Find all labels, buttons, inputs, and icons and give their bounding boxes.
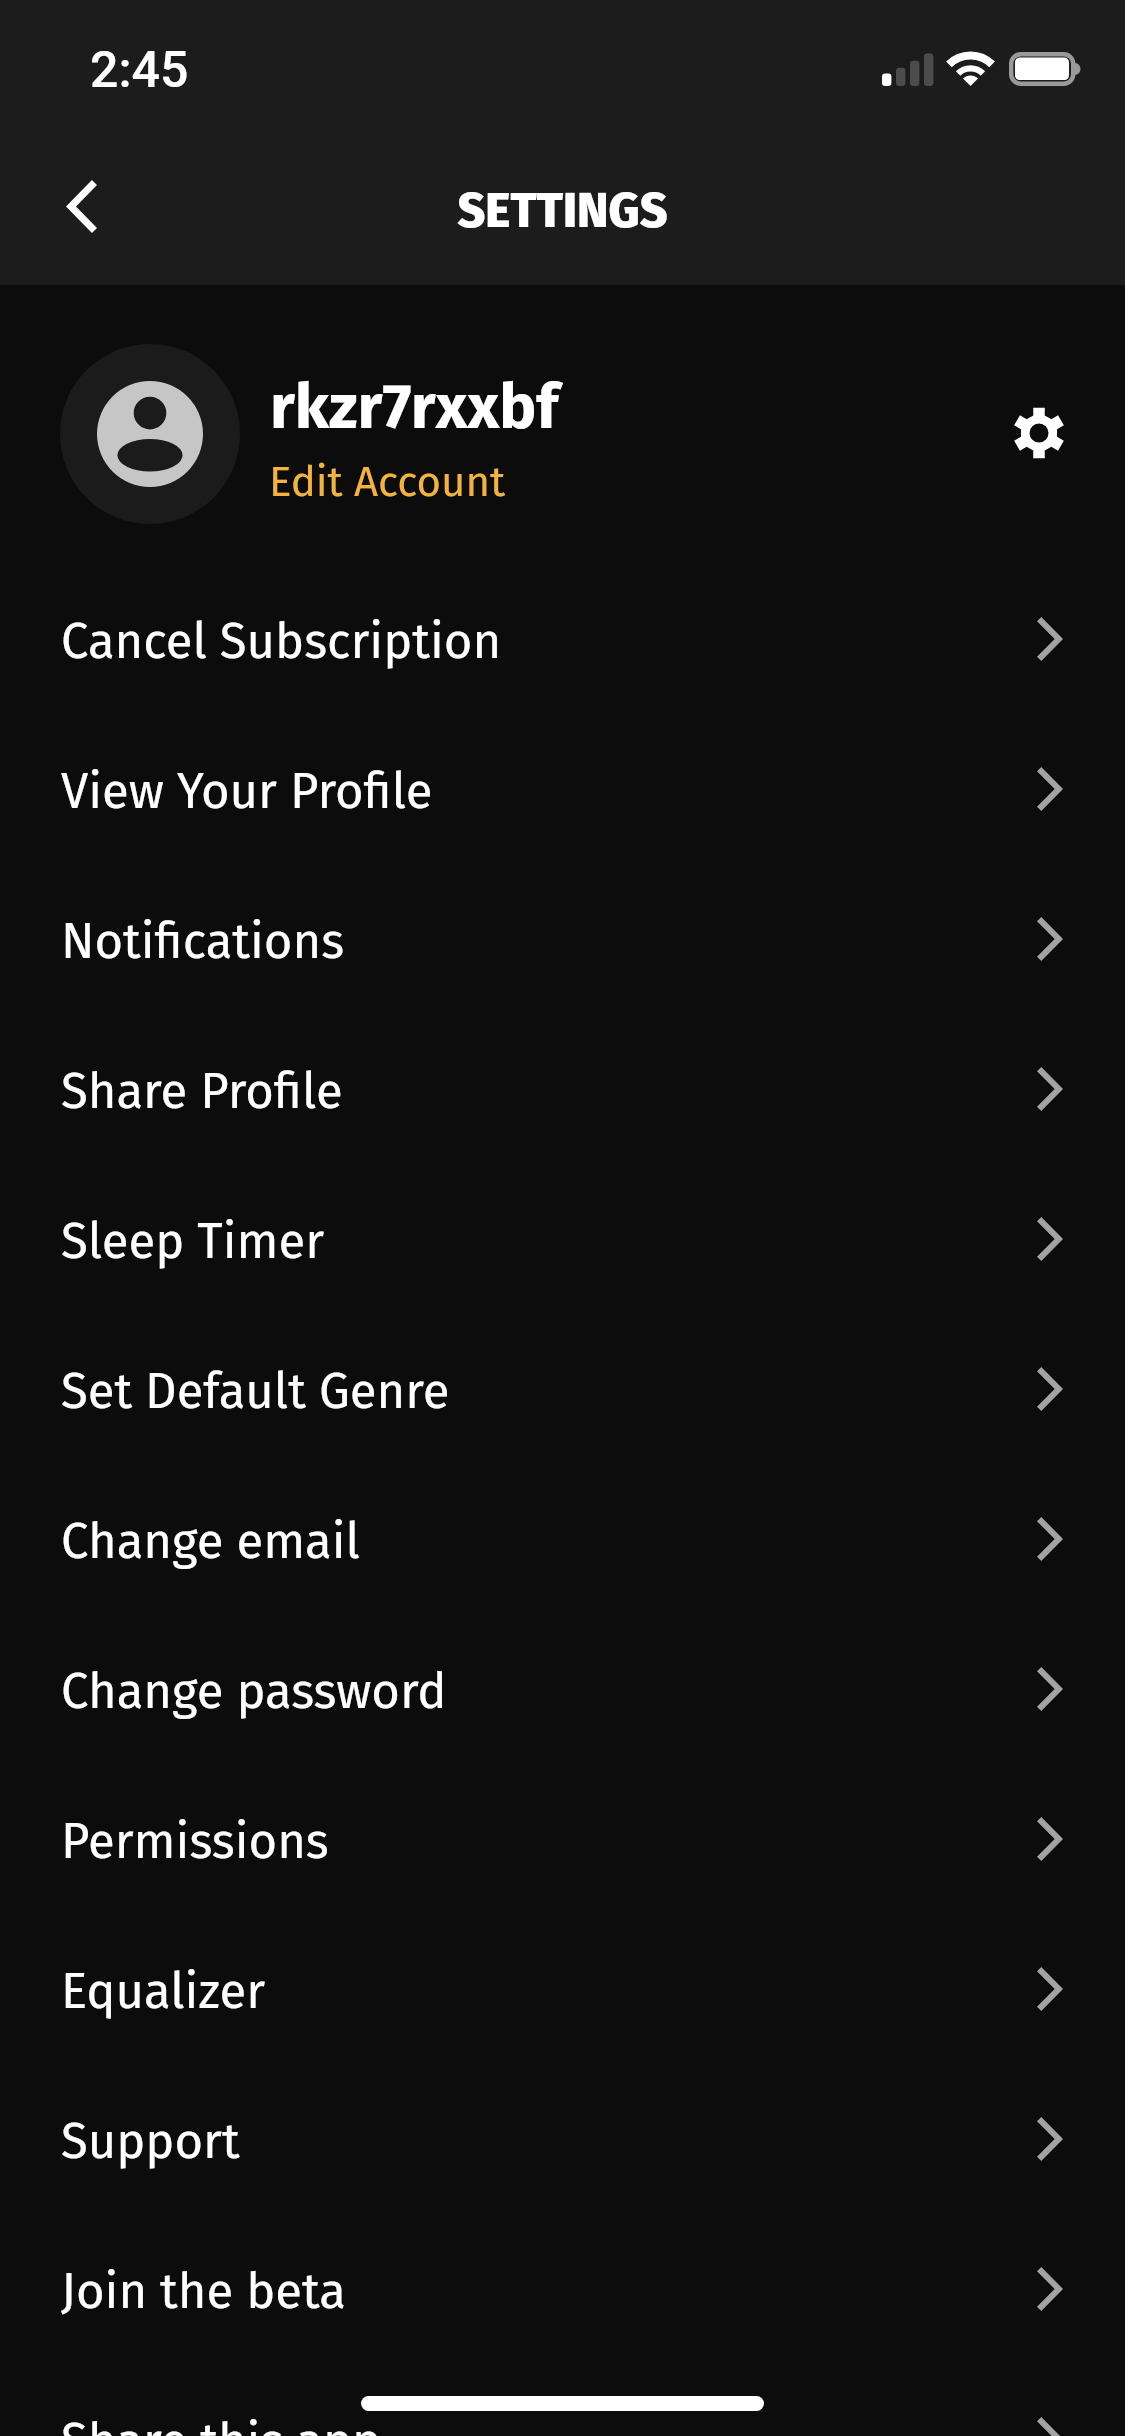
staticText: Change password <box>61 1662 447 1721</box>
button[interactable]: Edit Account <box>269 457 506 507</box>
staticText: Equalizer <box>61 1962 266 2021</box>
staticText: SETTINGS <box>0 182 1125 240</box>
staticText: Set Default Genre <box>61 1362 450 1421</box>
staticText: Share this app <box>61 2412 382 2436</box>
button[interactable]: View Your Profile <box>0 716 1125 866</box>
button[interactable]: Notifications <box>0 866 1125 1016</box>
button[interactable]: Join the beta <box>0 2216 1125 2366</box>
staticText: Sleep Timer <box>61 1212 325 1271</box>
button[interactable]: Equalizer <box>0 1916 1125 2066</box>
button[interactable]: Profile photo <box>60 344 240 524</box>
button[interactable]: Support <box>0 2066 1125 2216</box>
staticText: Join the beta <box>61 2262 346 2321</box>
button[interactable]: Set Default Genre <box>0 1316 1125 1466</box>
button[interactable]: Cancel Subscription <box>0 566 1125 716</box>
button[interactable]: Sleep Timer <box>0 1166 1125 1316</box>
staticText: Share Profile <box>61 1062 343 1121</box>
button[interactable]: Settings <box>989 383 1089 483</box>
button[interactable]: Change password <box>0 1616 1125 1766</box>
button[interactable]: Permissions <box>0 1766 1125 1916</box>
staticText: rkzr7rxxbf <box>270 370 559 444</box>
staticText: Notifications <box>61 912 345 971</box>
button[interactable]: Share Profile <box>0 1016 1125 1166</box>
button[interactable]: Change email <box>0 1466 1125 1616</box>
staticText: View Your Profile <box>61 762 433 821</box>
button[interactable]: Back <box>21 146 141 266</box>
staticText: Change email <box>61 1512 360 1571</box>
staticText: Cancel Subscription <box>61 612 502 671</box>
staticText: Permissions <box>61 1812 329 1871</box>
staticText: 2:45 <box>90 41 189 100</box>
button[interactable]: Share this app <box>0 2366 1125 2436</box>
staticText: Support <box>61 2112 240 2171</box>
